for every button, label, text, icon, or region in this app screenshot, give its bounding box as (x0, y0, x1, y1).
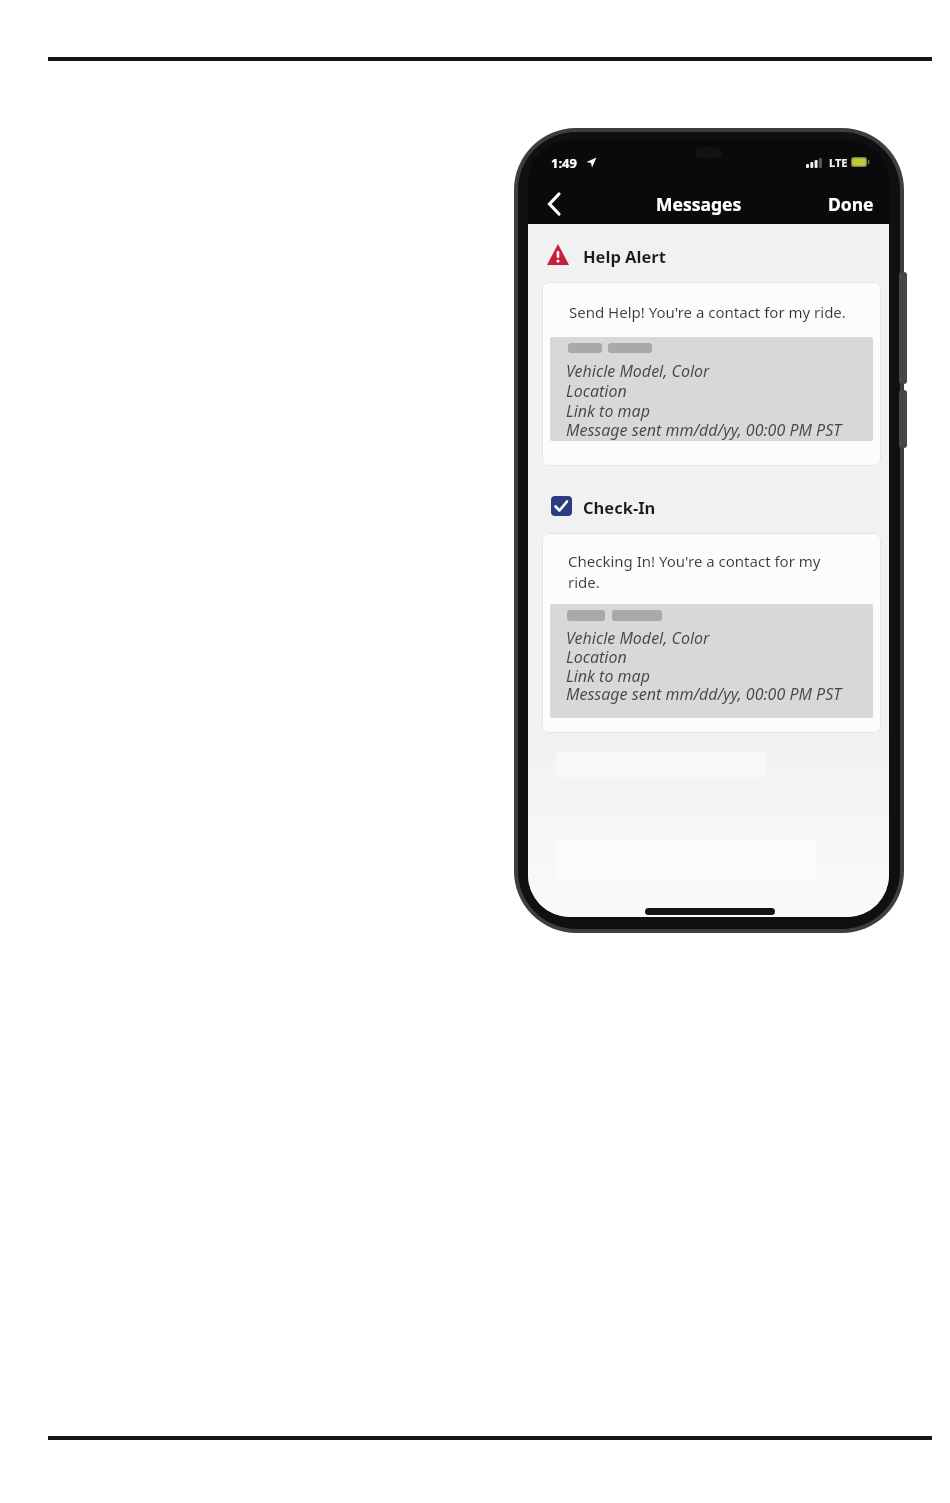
button[interactable] (540, 188, 574, 220)
staticText: Message sent mm/dd/yy, 00:00 PM PST (566, 419, 842, 441)
staticText: Message sent mm/dd/yy, 00:00 PM PST (566, 683, 842, 705)
button[interactable] (542, 533, 881, 733)
staticText: Done (828, 192, 874, 216)
staticText: Vehicle Model, Color (566, 360, 710, 382)
staticText: Check-In (583, 496, 656, 518)
button[interactable] (542, 282, 881, 466)
staticText: Send Help! You're a contact for my ride. (569, 302, 846, 322)
staticText: Location (566, 646, 627, 668)
button[interactable]: Done (784, 190, 874, 217)
staticText: 1:49 (551, 154, 577, 172)
staticText: ride. (568, 572, 600, 592)
staticText: Vehicle Model, Color (566, 627, 710, 649)
staticText: Location (566, 380, 627, 402)
staticText: Link to map (566, 665, 650, 687)
staticText: LTE (829, 155, 848, 170)
staticText: Link to map (566, 400, 650, 422)
staticText: Checking In! You're a contact for my (568, 551, 821, 571)
staticText: Messages (656, 192, 742, 216)
staticText: Help Alert (583, 245, 666, 267)
